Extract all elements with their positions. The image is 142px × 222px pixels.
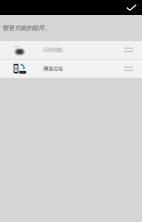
button[interactable]: 目的地點	[0, 41, 142, 59]
staticText: 變更功能的順序。	[3, 24, 51, 32]
button[interactable]: 傳送位址	[0, 60, 142, 78]
button[interactable]: Done	[123, 0, 140, 15]
staticText: 目的地點	[43, 47, 63, 53]
staticText: 傳送位址	[43, 65, 63, 72]
